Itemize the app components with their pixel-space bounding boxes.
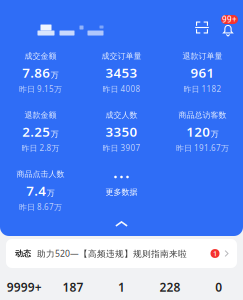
staticText: 昨日 9.15万 xyxy=(19,84,62,94)
staticText: 3453 xyxy=(105,64,137,81)
button[interactable]: Notifications xyxy=(215,13,243,39)
button[interactable]: 商品点击人数 xyxy=(0,170,81,219)
button[interactable]: 0 xyxy=(194,276,243,298)
staticText: 1 xyxy=(213,249,217,258)
staticText: 3350 xyxy=(105,123,137,140)
button[interactable]: 9999+ xyxy=(0,276,49,298)
staticText: 成交订单量 xyxy=(101,51,141,61)
staticText: 7.86 xyxy=(22,64,50,81)
button[interactable]: 228 xyxy=(146,276,194,298)
button[interactable]: 退款金额 xyxy=(0,111,81,160)
staticText: 0 xyxy=(215,279,222,295)
button[interactable]: 成交订单量 xyxy=(81,52,162,101)
staticText: 187 xyxy=(62,279,83,295)
staticText: 昨日 4008 xyxy=(102,84,140,94)
button[interactable]: 187 xyxy=(49,276,97,298)
staticText: 昨日 2.8万 xyxy=(21,143,59,153)
staticText: 成交金额 xyxy=(24,51,56,61)
staticText: 2.25 xyxy=(22,123,50,140)
button[interactable]: Collapse header xyxy=(96,215,146,233)
staticText: 961 xyxy=(190,64,214,81)
staticText: 万 xyxy=(47,188,55,198)
staticText: 120 xyxy=(186,123,210,140)
staticText: 228 xyxy=(160,279,181,295)
staticText: 9999+ xyxy=(7,279,42,295)
button[interactable]: 商品总访客数 xyxy=(162,111,243,160)
staticText: 昨日 3907 xyxy=(102,143,140,153)
staticText: 万 xyxy=(211,129,219,139)
staticText: 昨日 8.67万 xyxy=(19,202,62,212)
staticText: 更多数据 xyxy=(105,187,137,197)
button[interactable]: 更多数据 xyxy=(81,170,162,219)
button[interactable]: Scan xyxy=(190,15,214,39)
staticText: 退款金额 xyxy=(24,110,56,120)
staticText: 7.4 xyxy=(26,182,46,199)
staticText: 99+ xyxy=(222,14,237,25)
button[interactable]: 1 xyxy=(97,276,146,298)
button[interactable]: 退款订单量 xyxy=(162,52,243,101)
button[interactable]: 动态 xyxy=(6,239,237,268)
staticText: 成交人数 xyxy=(105,110,137,120)
staticText: 商品点击人数 xyxy=(16,169,64,179)
staticText: 万 xyxy=(51,129,59,139)
staticText: 昨日 191.67万 xyxy=(176,143,229,153)
staticText: 动态 xyxy=(15,249,31,258)
staticText: 万 xyxy=(51,70,59,80)
staticText: 1 xyxy=(118,279,125,295)
staticText: 商品总访客数 xyxy=(178,110,226,120)
button[interactable]: 成交人数 xyxy=(81,111,162,160)
staticText: 昨日 1182 xyxy=(183,84,221,94)
staticText: 助力520—【高频违规】规则指南来啦 xyxy=(37,248,187,259)
staticText: 退款订单量 xyxy=(182,51,222,61)
button[interactable]: 成交金额 xyxy=(0,52,81,101)
